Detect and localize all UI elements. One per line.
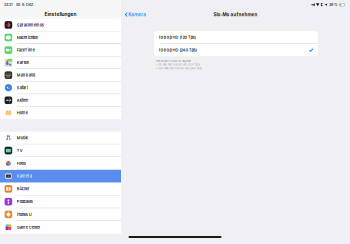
staticText: Slo-Mo aufnehmen — [213, 12, 257, 17]
staticText: Musik — [17, 135, 28, 140]
staticText: • 170 MB mit 1080p HD (120 fps) — [156, 63, 200, 66]
staticText: • 480 MB mit 1080p HD (240 fps) — [156, 67, 202, 70]
button[interactable]: Kamera — [0, 170, 121, 183]
button[interactable]: Maßband — [0, 69, 121, 82]
staticText: Sprachmemos — [17, 22, 44, 27]
button[interactable]: Aktien — [0, 94, 121, 107]
staticText: Maßband — [17, 73, 35, 77]
button[interactable]: Musik — [0, 132, 121, 144]
staticText: iTunes U — [17, 212, 32, 217]
staticText: 1080p HD (120 fps) — [159, 35, 196, 40]
button[interactable]: Karten — [0, 57, 121, 69]
staticText: TV — [17, 148, 23, 153]
button[interactable]: Fotos — [0, 157, 121, 170]
button[interactable]: Nachrichten — [0, 31, 121, 44]
staticText: Aktien — [17, 98, 28, 103]
staticText: Podcasts — [17, 199, 33, 204]
staticText: Nachrichten — [17, 35, 38, 40]
staticText: Kamera — [17, 174, 32, 178]
staticText: Eine Minute Slo-Mo ist ungefähr: — [156, 60, 192, 63]
staticText: Safari — [17, 85, 28, 90]
button[interactable]: 1080p HD (120 fps) — [154, 31, 318, 43]
staticText: 39 % — [329, 2, 338, 7]
staticText: Home — [17, 110, 28, 115]
button[interactable]: FaceTime — [0, 44, 121, 57]
button[interactable]: Safari — [0, 82, 121, 94]
button[interactable]: Sprachmemos — [0, 19, 121, 31]
staticText: Game Center — [17, 225, 41, 230]
button[interactable]: TV — [0, 144, 121, 157]
staticText: So. 9. Dez. — [16, 2, 34, 7]
button[interactable]: Bücher — [0, 183, 121, 195]
staticText: 23:21 — [4, 2, 13, 7]
staticText: Kamera — [128, 12, 146, 17]
button[interactable]: Podcasts — [0, 195, 121, 208]
staticText: FaceTime — [17, 48, 35, 52]
staticText: Fotos — [17, 161, 26, 166]
staticText: 1080p HD (240 fps) — [159, 48, 197, 52]
button[interactable]: 1080p HD (240 fps) — [154, 44, 318, 56]
button[interactable]: Kamera — [121, 9, 146, 20]
button[interactable]: Game Center — [0, 221, 121, 234]
button[interactable]: iTunes U — [0, 208, 121, 221]
staticText: Bücher — [17, 186, 30, 191]
staticText: Einstellungen — [44, 11, 76, 17]
button[interactable]: Home — [0, 107, 121, 119]
staticText: Karten — [17, 60, 29, 65]
